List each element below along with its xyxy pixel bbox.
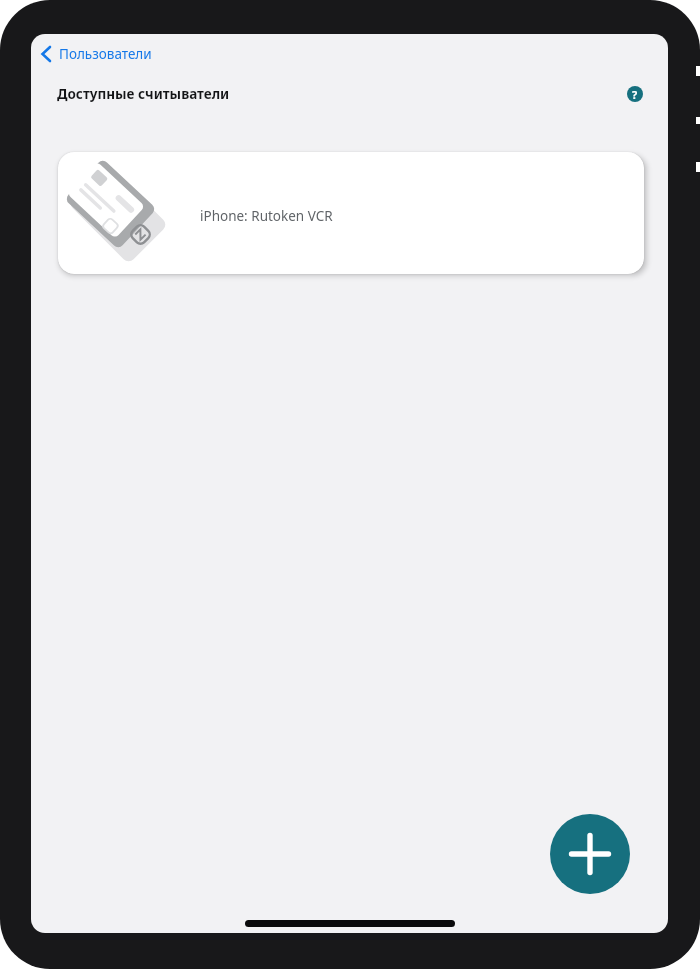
staticText: Пользователи (59, 45, 152, 63)
button[interactable]: ? (627, 86, 643, 102)
button[interactable]: iPhone: Rutoken VCR (58, 152, 644, 274)
button[interactable]: Пользователи (35, 40, 156, 68)
staticText: Доступные считыватели (57, 85, 230, 103)
staticText: iPhone: Rutoken VCR (200, 207, 333, 225)
button[interactable] (550, 814, 630, 894)
staticText: ? (632, 87, 638, 102)
